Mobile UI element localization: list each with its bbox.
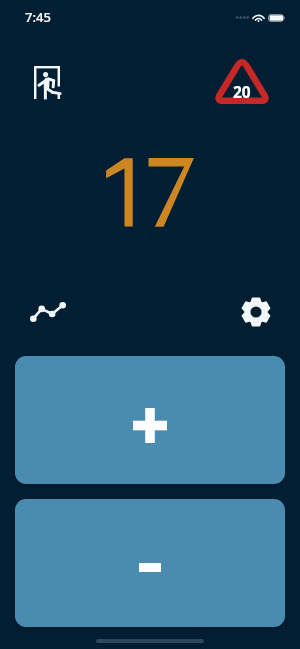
button[interactable]: Exit — [26, 58, 68, 106]
button[interactable]: Settings — [235, 290, 277, 334]
staticText: 20 — [233, 81, 251, 102]
button[interactable]: Decrease — [15, 499, 285, 627]
button[interactable]: Speed limit 20 — [206, 49, 278, 109]
button[interactable]: History — [25, 290, 70, 334]
staticText: 7:45 — [25, 8, 51, 26]
button[interactable]: Increase — [15, 356, 285, 484]
